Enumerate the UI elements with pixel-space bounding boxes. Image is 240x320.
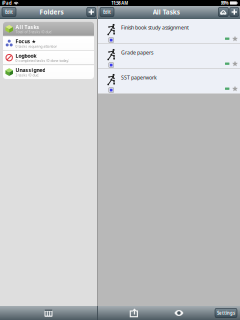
staticText: 0 tasks requiring attention [15, 44, 57, 49]
button[interactable]: Edit [2, 7, 16, 17]
staticText: Grade papers [121, 49, 153, 56]
staticText: Finish book study assignment [121, 24, 189, 31]
staticText: Edit [5, 9, 13, 15]
staticText: Edit [103, 9, 111, 15]
button[interactable]: Calendar [39, 306, 57, 320]
button[interactable]: New Folder [87, 7, 96, 17]
staticText: Unassigned [15, 67, 45, 74]
button[interactable]: Preview [170, 306, 188, 320]
button[interactable]: Edit [100, 7, 114, 17]
button[interactable]: Unassigned [3, 65, 94, 79]
staticText: Settings [217, 310, 235, 316]
staticText: 3 tasks (0 due) [15, 73, 39, 77]
button[interactable]: Logbook [3, 51, 94, 65]
staticText: All Tasks [153, 8, 180, 16]
staticText: SST paperwork [121, 74, 157, 81]
staticText: Total of 3 tasks (0 due) [15, 30, 52, 34]
staticText: 11:58 AM [111, 0, 128, 6]
staticText: All Tasks [15, 23, 39, 30]
button[interactable]: New Task [230, 7, 239, 17]
staticText: 0 completed tasks (0 done today) [15, 58, 69, 63]
button[interactable]: SST paperwork [98, 69, 240, 94]
staticText: Folders [39, 8, 63, 16]
button[interactable]: Grade papers [98, 44, 240, 69]
staticText: iPad [2, 0, 12, 6]
button[interactable]: Focus ★ [3, 36, 94, 50]
button[interactable]: Finish book study assignment [98, 19, 240, 44]
button[interactable]: All Tasks [3, 22, 94, 36]
staticText: 99% [221, 0, 229, 6]
staticText: Logbook [15, 52, 36, 59]
staticText: Focus ★ [15, 38, 36, 45]
button[interactable]: Sync [218, 7, 228, 17]
button[interactable]: Share [125, 306, 143, 320]
button[interactable]: Settings [215, 308, 237, 318]
